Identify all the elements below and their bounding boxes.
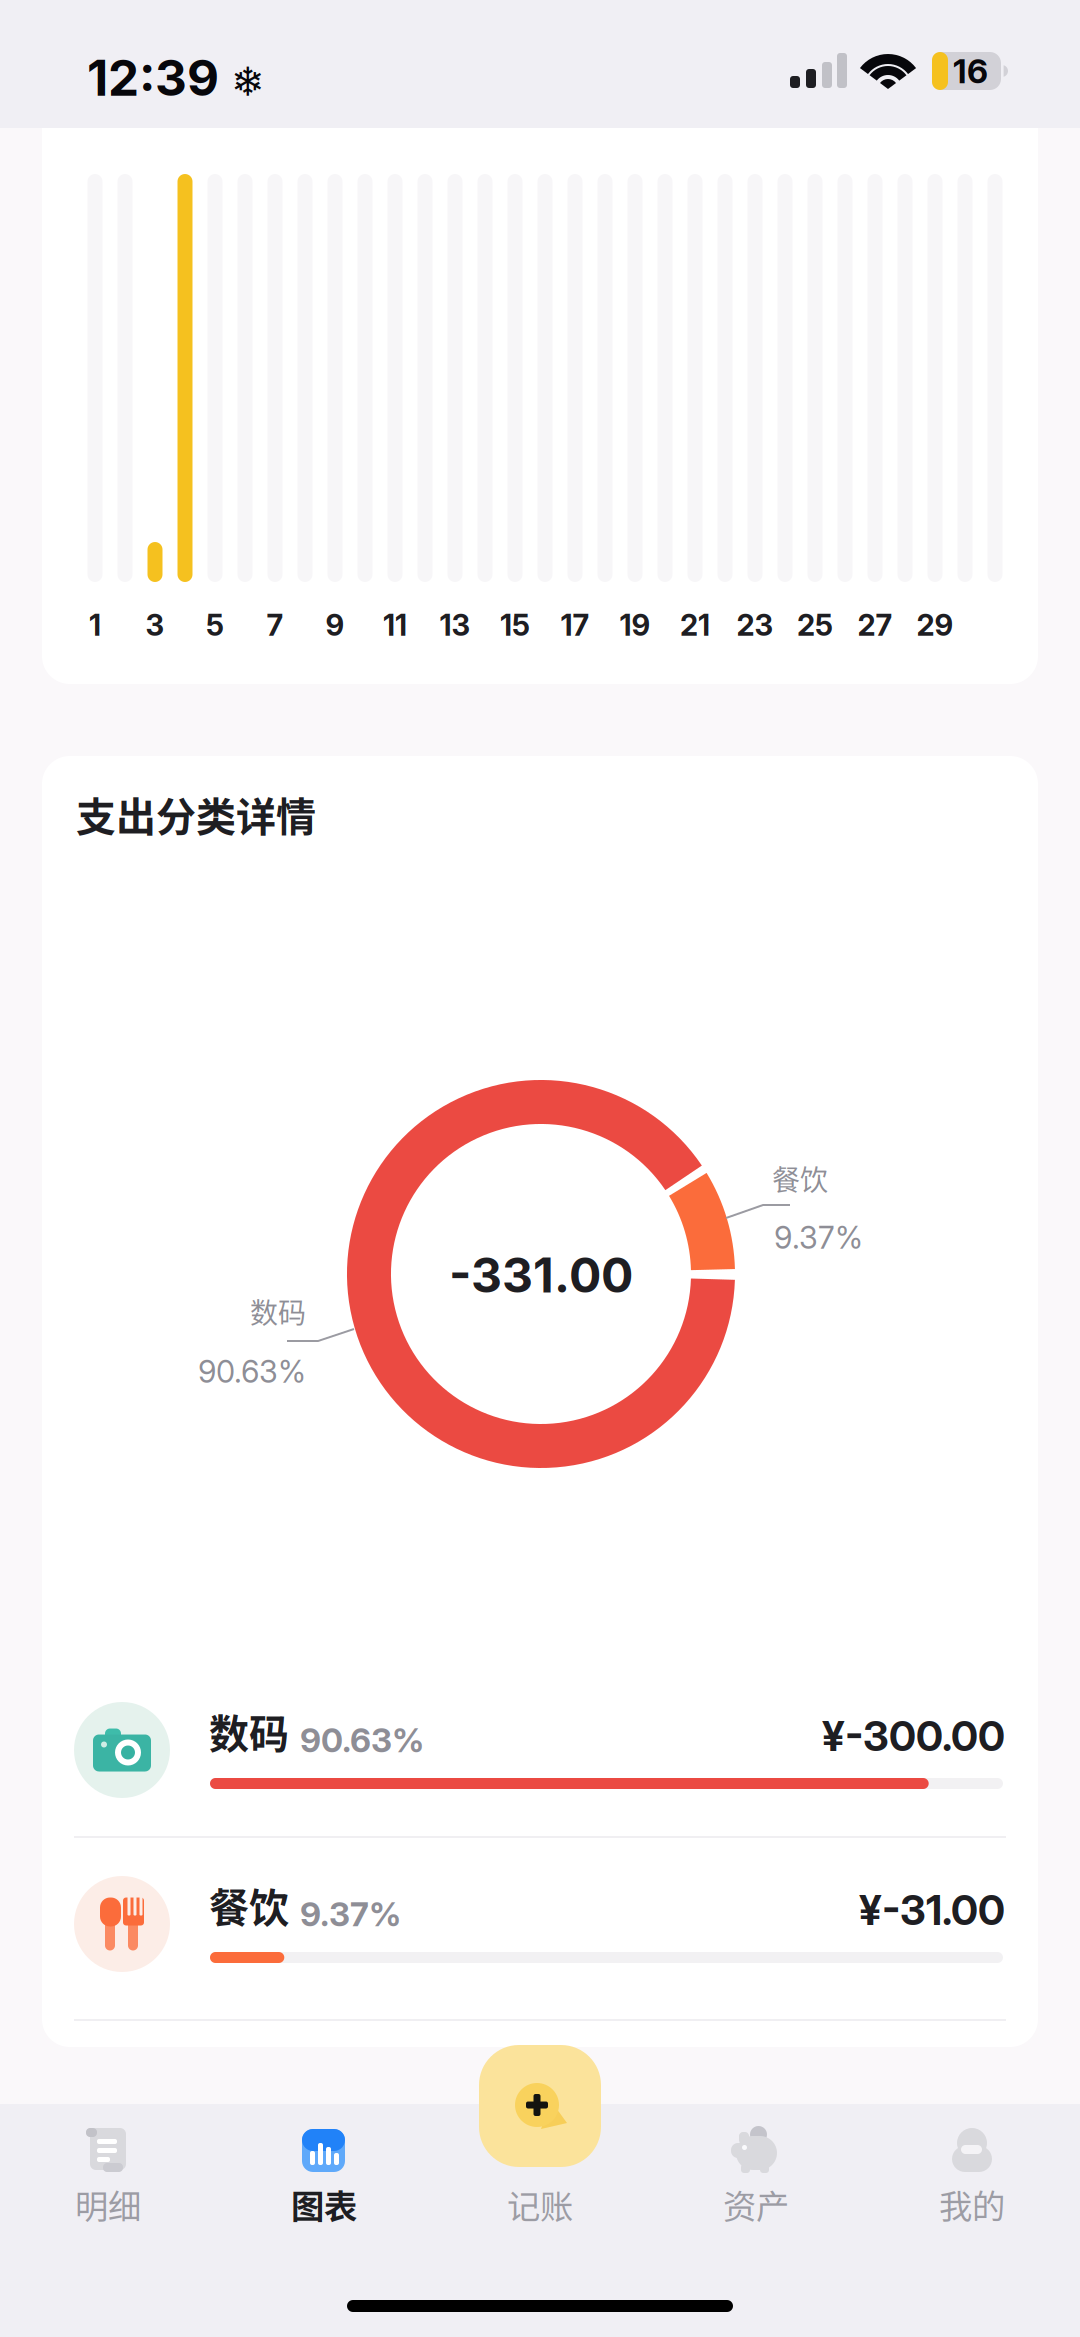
staticText: 9.37%: [300, 1894, 401, 1934]
staticText: 记账: [507, 2180, 573, 2228]
staticText: 9.37%: [774, 1219, 863, 1256]
staticText: 数码: [209, 1702, 289, 1760]
staticText: 数码: [250, 1291, 306, 1331]
staticText: ❄: [231, 59, 265, 105]
staticText: -331.00: [449, 1246, 633, 1304]
staticText: 90.63%: [198, 1353, 306, 1390]
staticText: 12:39: [87, 48, 219, 108]
staticText: 我的: [939, 2180, 1005, 2228]
staticText: 29: [916, 607, 953, 643]
button[interactable]: 我的: [864, 2104, 1080, 2337]
staticText: 25: [797, 607, 833, 643]
staticText: 13: [439, 607, 470, 643]
staticText: 90.63%: [300, 1720, 424, 1760]
staticText: ¥-300.00: [822, 1711, 1005, 1761]
staticText: 3: [145, 607, 164, 643]
staticText: 1: [89, 607, 101, 643]
staticText: 27: [857, 607, 892, 643]
staticText: 11: [383, 607, 407, 643]
staticText: 9: [325, 607, 344, 643]
staticText: ¥-31.00: [859, 1885, 1005, 1935]
staticText: 21: [680, 607, 710, 643]
staticText: 支出分类详情: [76, 785, 316, 843]
button[interactable]: 记账: [432, 2104, 648, 2337]
staticText: 16: [953, 51, 988, 91]
staticText: 资产: [723, 2180, 789, 2228]
button[interactable]: 餐饮: [42, 1835, 1038, 2009]
staticText: 餐饮: [772, 1158, 828, 1198]
button[interactable]: 记账: [479, 2045, 601, 2167]
staticText: 5: [206, 607, 224, 643]
staticText: 23: [736, 607, 773, 643]
staticText: 餐饮: [209, 1876, 289, 1934]
button[interactable]: 资产: [648, 2104, 864, 2337]
staticText: 7: [266, 607, 283, 643]
button[interactable]: 图表: [216, 2104, 432, 2337]
staticText: 17: [560, 607, 589, 643]
staticText: 明细: [75, 2180, 141, 2228]
staticText: 19: [619, 607, 650, 643]
staticText: 15: [500, 607, 530, 643]
staticText: 图表: [291, 2180, 357, 2228]
button[interactable]: 数码: [42, 1661, 1038, 1835]
button[interactable]: 明细: [0, 2104, 216, 2337]
